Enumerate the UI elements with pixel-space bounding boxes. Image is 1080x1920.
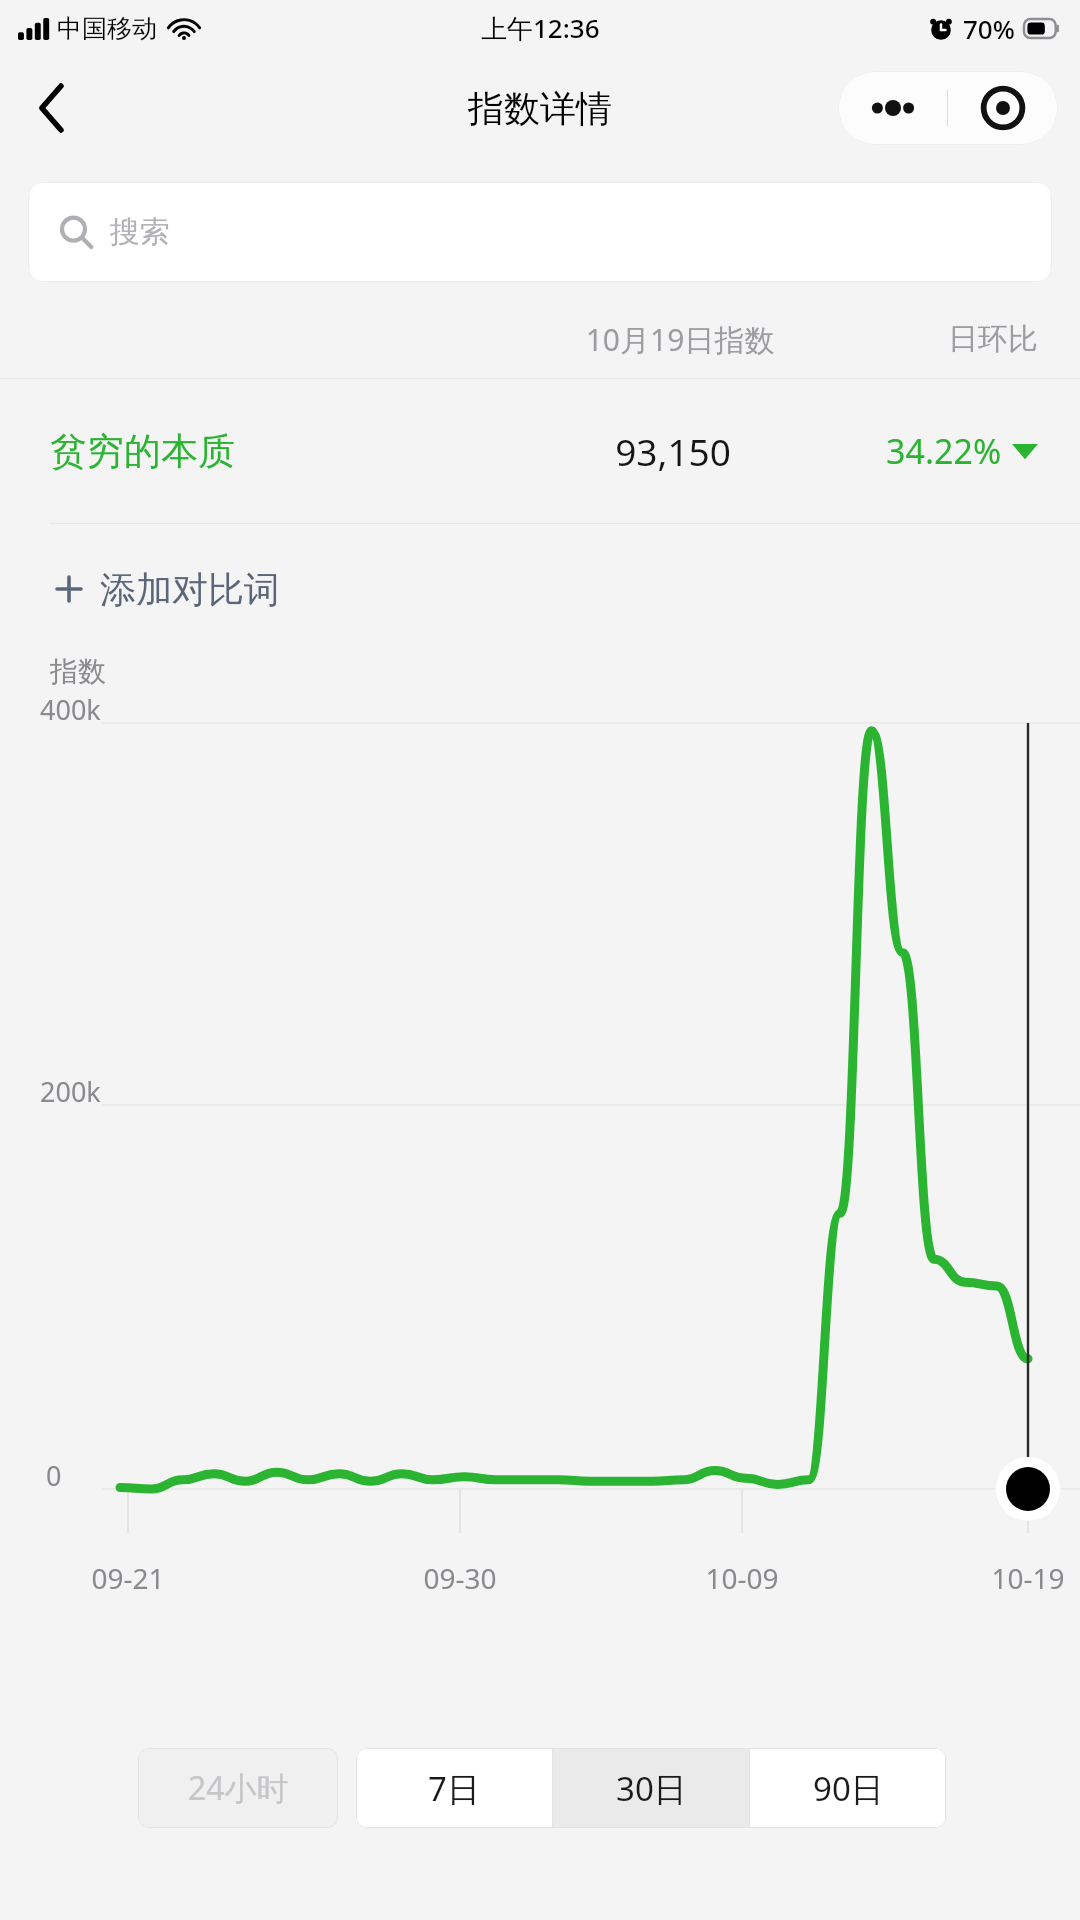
- staticText: 24小时: [188, 1766, 289, 1810]
- staticText: 90日: [813, 1766, 884, 1811]
- button[interactable]: 贫穷的本质: [0, 379, 1080, 523]
- staticText: 上午12:36: [481, 10, 600, 46]
- button[interactable]: 90日: [750, 1748, 946, 1828]
- button[interactable]: More: [838, 71, 947, 145]
- staticText: 93,150: [548, 426, 798, 476]
- staticText: 指数详情: [468, 86, 612, 131]
- staticText: 7日: [428, 1766, 480, 1811]
- staticText: 09-21: [66, 1559, 190, 1597]
- staticText: 09-30: [398, 1559, 522, 1597]
- staticText: 10月19日指数: [530, 319, 830, 360]
- staticText: 34.22%: [886, 428, 1002, 474]
- staticText: 200k: [40, 1073, 101, 1110]
- staticText: 中国移动: [57, 13, 157, 44]
- staticText: 70%: [963, 11, 1015, 46]
- button[interactable]: 7日: [356, 1748, 552, 1828]
- staticText: 日环比: [878, 320, 1038, 358]
- staticText: 30日: [616, 1766, 687, 1811]
- staticText: 10-09: [680, 1559, 804, 1597]
- button[interactable]: 搜索: [28, 182, 1052, 282]
- button[interactable]: 30日: [553, 1748, 749, 1828]
- staticText: 指数: [50, 654, 106, 689]
- staticText: 400k: [40, 691, 101, 728]
- staticText: 10-19: [966, 1559, 1080, 1597]
- button[interactable]: Back: [14, 70, 90, 146]
- staticText: 搜索: [110, 213, 170, 251]
- staticText: 添加对比词: [100, 567, 280, 612]
- staticText: 0: [46, 1457, 62, 1494]
- button[interactable]: Close: [948, 71, 1058, 145]
- staticText: 贫穷的本质: [50, 428, 235, 475]
- button[interactable]: 添加对比词: [0, 524, 320, 654]
- button[interactable]: 24小时: [138, 1748, 338, 1828]
